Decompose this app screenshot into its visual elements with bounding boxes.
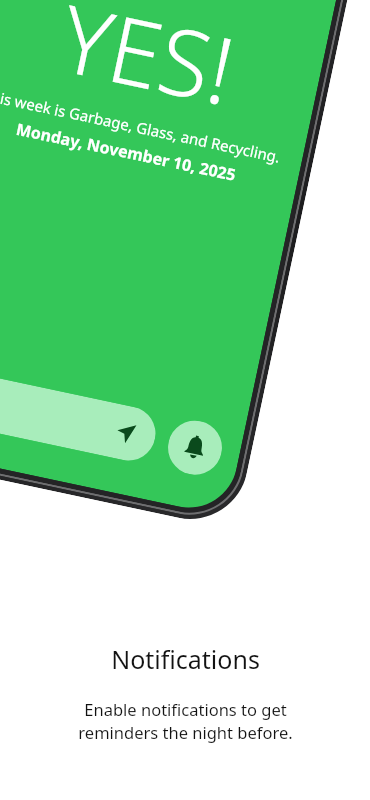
staticText: Notifications [111,642,260,676]
button[interactable]: Notifications [163,416,227,480]
staticText: YES! [50,0,245,132]
staticText: This week is Garbage, Glass, and Recycli… [0,84,282,167]
staticText: Enable notifications to get reminders th… [78,698,293,744]
staticText: Monday, November 10, 2025 [14,118,238,186]
other: Locate [111,420,138,446]
button[interactable]: Search [0,362,160,466]
